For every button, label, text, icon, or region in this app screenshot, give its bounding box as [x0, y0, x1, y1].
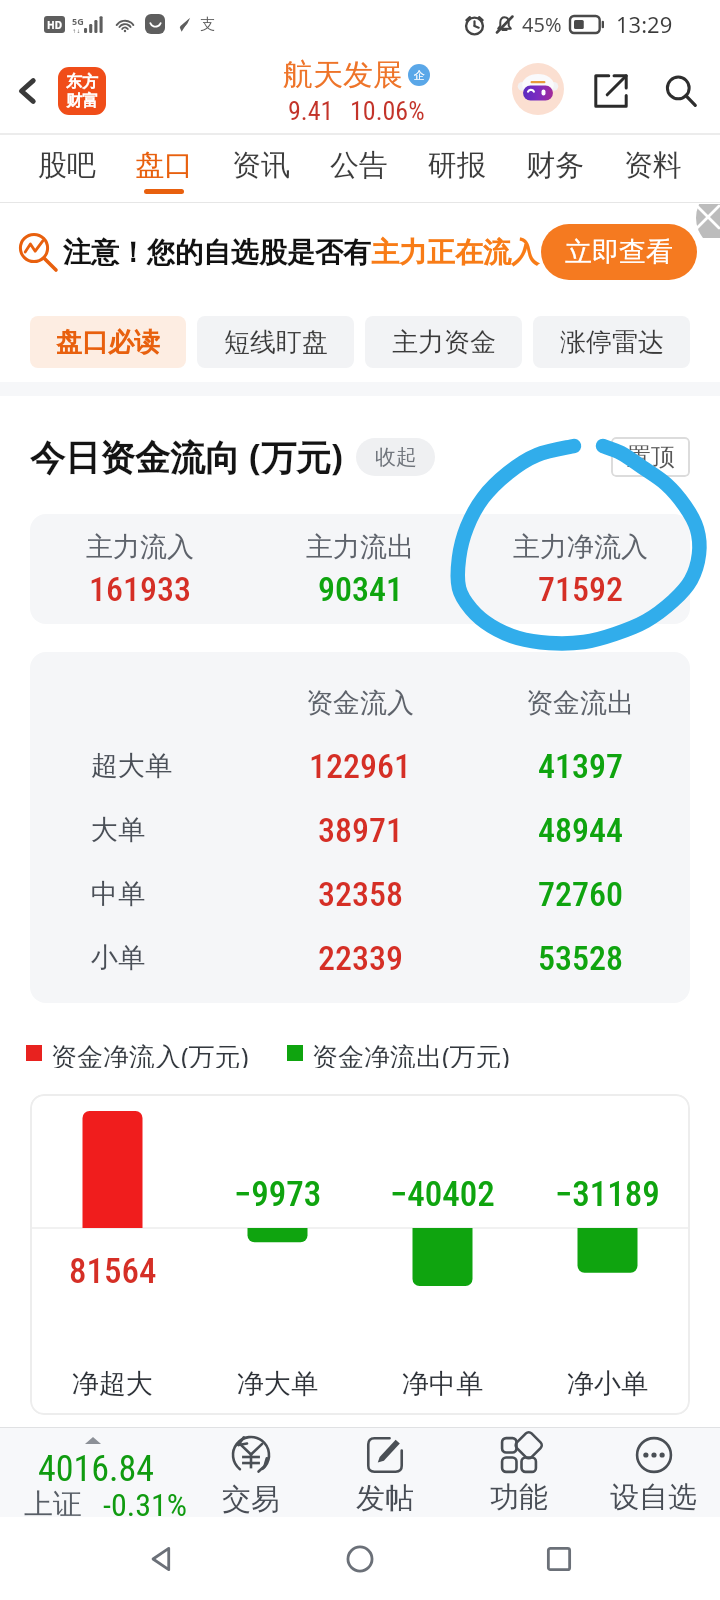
staticText: 主力流出: [306, 530, 414, 564]
button[interactable]: Home: [323, 1522, 397, 1596]
button[interactable]: AI Assistant: [512, 63, 564, 115]
staticText: 主力资金: [392, 326, 496, 359]
staticText: 您的自选股是否有: [147, 235, 371, 270]
staticText: 超大单: [91, 749, 172, 783]
button[interactable]: 资讯: [212, 134, 310, 203]
staticText: 90341: [318, 569, 403, 609]
button[interactable]: 股吧: [18, 134, 115, 203]
staticText: 81564: [69, 1251, 157, 1292]
staticText: 资金净流出(万元): [312, 1038, 510, 1068]
staticText: 盘口必读: [56, 326, 160, 359]
button[interactable]: 交易: [184, 1427, 318, 1517]
staticText: 主力正在流入: [371, 235, 539, 270]
button[interactable]: 盘口: [115, 134, 212, 203]
staticText: 161933: [89, 569, 191, 609]
button[interactable]: Back: [0, 63, 56, 119]
staticText: 22339: [318, 938, 403, 978]
staticText: 10.06%: [350, 96, 425, 126]
staticText: −31189: [555, 1174, 660, 1215]
staticText: 大单: [91, 813, 145, 847]
staticText: 研报: [428, 147, 486, 184]
button[interactable]: 涨停雷达: [533, 316, 690, 368]
button[interactable]: 短线盯盘: [197, 316, 354, 368]
staticText: 中单: [91, 877, 145, 911]
staticText: 立即查看: [565, 235, 673, 269]
staticText: 资金流入: [306, 686, 414, 720]
staticText: 上证: [24, 1486, 82, 1523]
staticText: 收起: [375, 444, 417, 470]
button[interactable]: 置顶: [611, 437, 690, 477]
staticText: 财富: [66, 91, 98, 111]
staticText: 股吧: [38, 147, 96, 184]
staticText: 13:29: [616, 9, 673, 39]
staticText: 48944: [538, 810, 623, 850]
button[interactable]: 东方: [58, 67, 106, 115]
button[interactable]: Search: [657, 67, 705, 115]
staticText: 短线盯盘: [224, 326, 328, 359]
staticText: 41397: [538, 746, 623, 786]
button[interactable]: 收起: [356, 438, 435, 476]
staticText: 企: [414, 68, 425, 82]
staticText: 交易: [222, 1481, 280, 1518]
staticText: HD: [47, 18, 62, 32]
button[interactable]: 设自选: [586, 1427, 720, 1517]
button[interactable]: Share: [587, 67, 635, 115]
button[interactable]: 公告: [310, 134, 408, 203]
staticText: 主力净流入: [513, 530, 648, 564]
staticText: 盘口: [135, 147, 193, 184]
staticText: 公告: [330, 147, 388, 184]
staticText: 小单: [91, 941, 145, 975]
staticText: 4016.84: [38, 1448, 155, 1490]
staticText: 置顶: [627, 442, 675, 472]
staticText: 资料: [624, 147, 682, 184]
staticText: 9.41: [288, 96, 334, 126]
staticText: −40402: [390, 1174, 495, 1215]
staticText: 功能: [490, 1479, 548, 1516]
staticText: 71592: [538, 569, 623, 609]
staticText: 今日资金流向 (万元): [30, 433, 343, 481]
staticText: 45%: [522, 11, 562, 38]
staticText: 资讯: [232, 147, 290, 184]
button[interactable]: 发帖: [318, 1427, 452, 1517]
button[interactable]: Back: [125, 1522, 199, 1596]
staticText: 涨停雷达: [560, 326, 664, 359]
staticText: -0.31%: [103, 1486, 188, 1524]
staticText: 资金流出: [526, 686, 634, 720]
staticText: 发帖: [356, 1480, 414, 1517]
button[interactable]: 功能: [452, 1427, 586, 1517]
staticText: 38971: [318, 810, 403, 850]
staticText: 净大单: [237, 1367, 318, 1401]
staticText: ↑↓: [72, 28, 81, 34]
staticText: 5G: [72, 15, 84, 27]
staticText: 支: [200, 15, 215, 34]
button[interactable]: Close: [680, 204, 720, 238]
staticText: 净超大: [72, 1367, 153, 1401]
staticText: 资金净流入(万元): [51, 1038, 249, 1068]
staticText: 财务: [526, 147, 584, 184]
staticText: 53528: [538, 938, 623, 978]
staticText: 东方: [66, 72, 98, 92]
staticText: 净中单: [402, 1367, 483, 1401]
button[interactable]: 研报: [408, 134, 506, 203]
staticText: 122961: [309, 746, 411, 786]
staticText: 注意！: [63, 235, 147, 270]
staticText: 32358: [318, 874, 403, 914]
button[interactable]: 4016.84: [0, 1427, 184, 1517]
staticText: 设自选: [610, 1479, 697, 1516]
staticText: 航天发展: [283, 56, 403, 94]
staticText: 72760: [538, 874, 623, 914]
button[interactable]: 资料: [604, 134, 702, 203]
button[interactable]: 立即查看: [541, 224, 697, 280]
staticText: −9973: [234, 1174, 322, 1215]
button[interactable]: 主力资金: [365, 316, 522, 368]
button[interactable]: Recents: [522, 1522, 596, 1596]
button[interactable]: 盘口必读: [30, 316, 186, 368]
staticText: 主力流入: [86, 530, 194, 564]
staticText: 净小单: [567, 1367, 648, 1401]
button[interactable]: 财务: [506, 134, 604, 203]
